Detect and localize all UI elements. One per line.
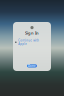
staticText: Continue with Apple — [18, 39, 39, 46]
staticText: Done — [28, 64, 36, 68]
staticText: Sign In — [25, 30, 39, 36]
button[interactable]: Done — [27, 64, 37, 67]
